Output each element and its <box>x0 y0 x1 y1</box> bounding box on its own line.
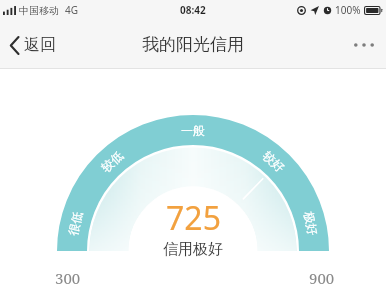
staticText: 300 <box>55 268 81 288</box>
staticText: 100% <box>335 3 361 17</box>
staticText: 中国移动 <box>19 4 59 17</box>
staticText: 较低 <box>98 148 126 175</box>
staticText: 很低 <box>65 210 85 237</box>
button[interactable]: 返回 <box>0 27 68 63</box>
staticText: 900 <box>309 268 335 288</box>
staticText: 信用极好 <box>163 240 223 259</box>
staticText: 725 <box>166 196 221 240</box>
button[interactable]: 很低 <box>0 69 386 301</box>
staticText: 一般 <box>181 123 205 138</box>
staticText: 极好 <box>301 210 321 237</box>
staticText: 08:42 <box>180 3 206 17</box>
staticText: 返回 <box>24 35 56 55</box>
button[interactable]: More options <box>342 29 386 61</box>
staticText: 较好 <box>260 148 288 175</box>
staticText: 4G <box>65 3 78 17</box>
staticText: 我的阳光信用 <box>142 34 244 55</box>
